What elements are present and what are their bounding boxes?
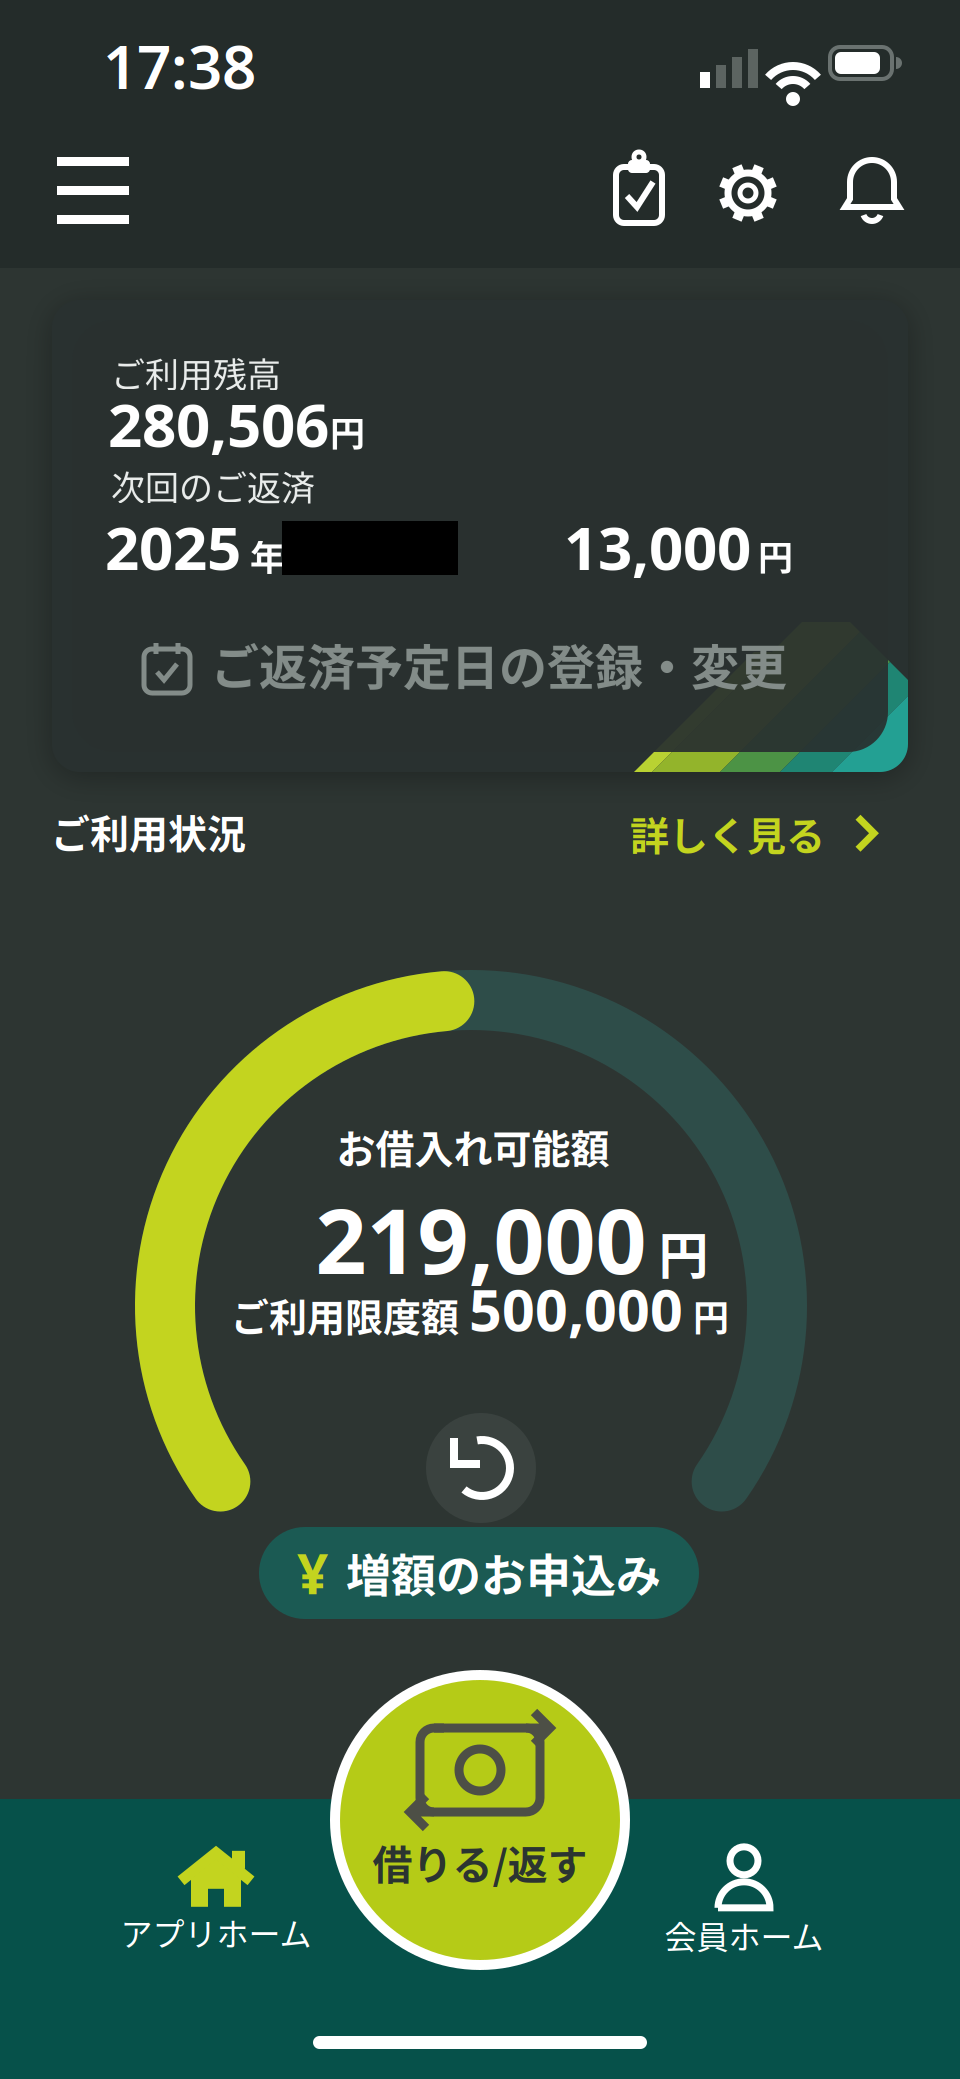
- staticText: ご利用残高: [111, 348, 281, 397]
- staticText: 280,506: [108, 384, 329, 464]
- button[interactable]: ご返済予定日の登録・変更: [92, 626, 868, 730]
- staticText: ご返済予定日の登録・変更: [211, 629, 787, 698]
- button[interactable]: 会員ホーム: [584, 1827, 904, 1977]
- staticText: 増額のお申込み: [346, 1540, 661, 1606]
- button[interactable]: 借りる/返す: [330, 1670, 630, 1970]
- staticText: 次回のご返済: [111, 461, 315, 510]
- staticText: 円: [693, 1290, 729, 1342]
- staticText: ご利用状況: [51, 803, 246, 859]
- staticText: 詳しく見る: [630, 805, 825, 861]
- staticText: 円: [758, 530, 793, 581]
- button[interactable]: ¥: [259, 1527, 699, 1619]
- staticText: 17:38: [103, 26, 256, 106]
- staticText: ¥: [297, 1537, 328, 1609]
- button[interactable]: 更新: [426, 1413, 536, 1523]
- button[interactable]: 申込状況: [606, 149, 672, 233]
- staticText: 500,000: [469, 1271, 683, 1347]
- staticText: 13,000: [564, 507, 751, 587]
- button[interactable]: 設定: [715, 160, 781, 226]
- button[interactable]: ホーム: [313, 2036, 647, 2049]
- staticText: 円: [330, 406, 365, 457]
- staticText: 借りる/返す: [372, 1833, 587, 1891]
- button[interactable]: 詳しく見る: [630, 805, 879, 861]
- button[interactable]: お知らせ: [845, 160, 901, 226]
- button[interactable]: アプリホーム: [56, 1827, 376, 1977]
- button[interactable]: メニュー: [45, 145, 141, 237]
- staticText: 円: [658, 1216, 708, 1288]
- staticText: 219,000: [315, 1180, 646, 1299]
- staticText: 年: [250, 530, 285, 581]
- staticText: 2025: [105, 507, 241, 587]
- staticText: ご利用限度額: [231, 1287, 459, 1342]
- staticText: アプリホーム: [120, 1909, 311, 1955]
- staticText: お借入れ可能額: [336, 1118, 609, 1174]
- staticText: 会員ホーム: [664, 1912, 823, 1958]
